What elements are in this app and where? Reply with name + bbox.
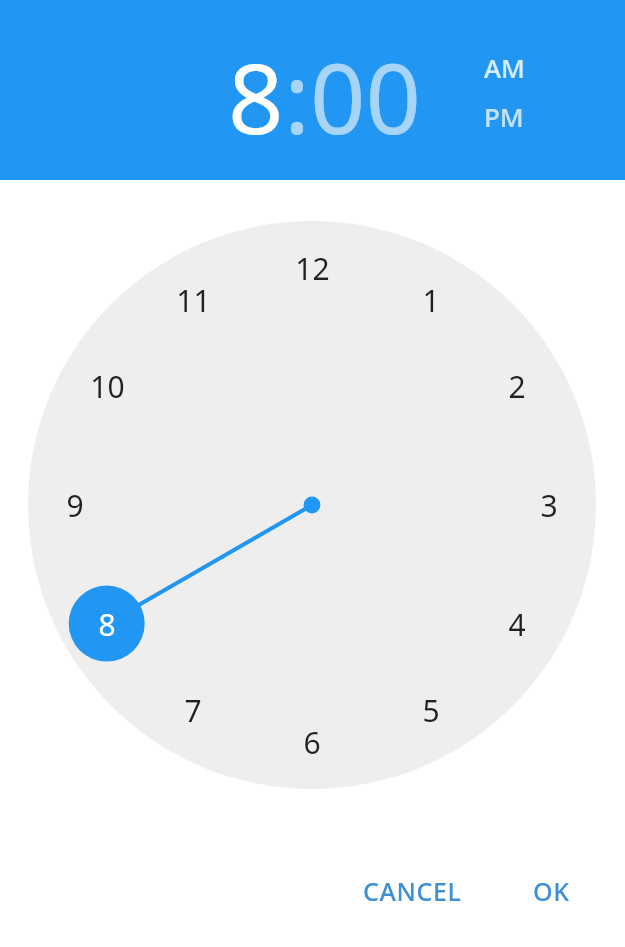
staticText: AM xyxy=(484,50,525,85)
staticText: OK xyxy=(533,874,570,908)
staticText: 9 xyxy=(66,485,84,526)
button[interactable]: 12 xyxy=(274,230,350,306)
button[interactable]: 5 xyxy=(393,672,469,748)
staticText: 5 xyxy=(422,690,440,731)
button[interactable]: 6 xyxy=(274,704,350,780)
button[interactable]: 8 xyxy=(228,30,284,162)
button[interactable]: 9 xyxy=(37,467,113,543)
staticText: 6 xyxy=(303,722,321,763)
staticText: CANCEL xyxy=(363,874,462,908)
button[interactable]: CANCEL xyxy=(345,864,480,918)
button[interactable]: Clock dial, 8 o'clock selected xyxy=(28,221,596,789)
staticText: PM xyxy=(484,99,524,134)
staticText: 1 xyxy=(422,280,440,321)
button[interactable]: 11 xyxy=(155,262,231,338)
staticText: 7 xyxy=(184,690,202,731)
staticText: 00 xyxy=(310,30,421,162)
button[interactable]: 1 xyxy=(393,262,469,338)
staticText: 3 xyxy=(540,485,558,526)
staticText: 11 xyxy=(176,280,211,321)
button[interactable]: 2 xyxy=(479,348,555,424)
staticText: 12 xyxy=(295,248,330,289)
button[interactable]: 3 xyxy=(511,467,587,543)
staticText: : xyxy=(284,30,310,162)
button[interactable]: 8 xyxy=(69,586,145,662)
button[interactable]: 7 xyxy=(155,672,231,748)
staticText: 4 xyxy=(508,604,526,645)
button[interactable]: OK xyxy=(515,864,588,918)
button[interactable]: 10 xyxy=(69,348,145,424)
button[interactable]: AM xyxy=(484,50,525,85)
button[interactable]: 4 xyxy=(479,586,555,662)
staticText: 8 xyxy=(98,604,116,645)
staticText: 8 xyxy=(228,30,284,162)
button[interactable]: PM xyxy=(484,99,524,134)
staticText: 10 xyxy=(90,366,125,407)
button[interactable]: 00 xyxy=(310,30,421,162)
staticText: 2 xyxy=(508,366,526,407)
